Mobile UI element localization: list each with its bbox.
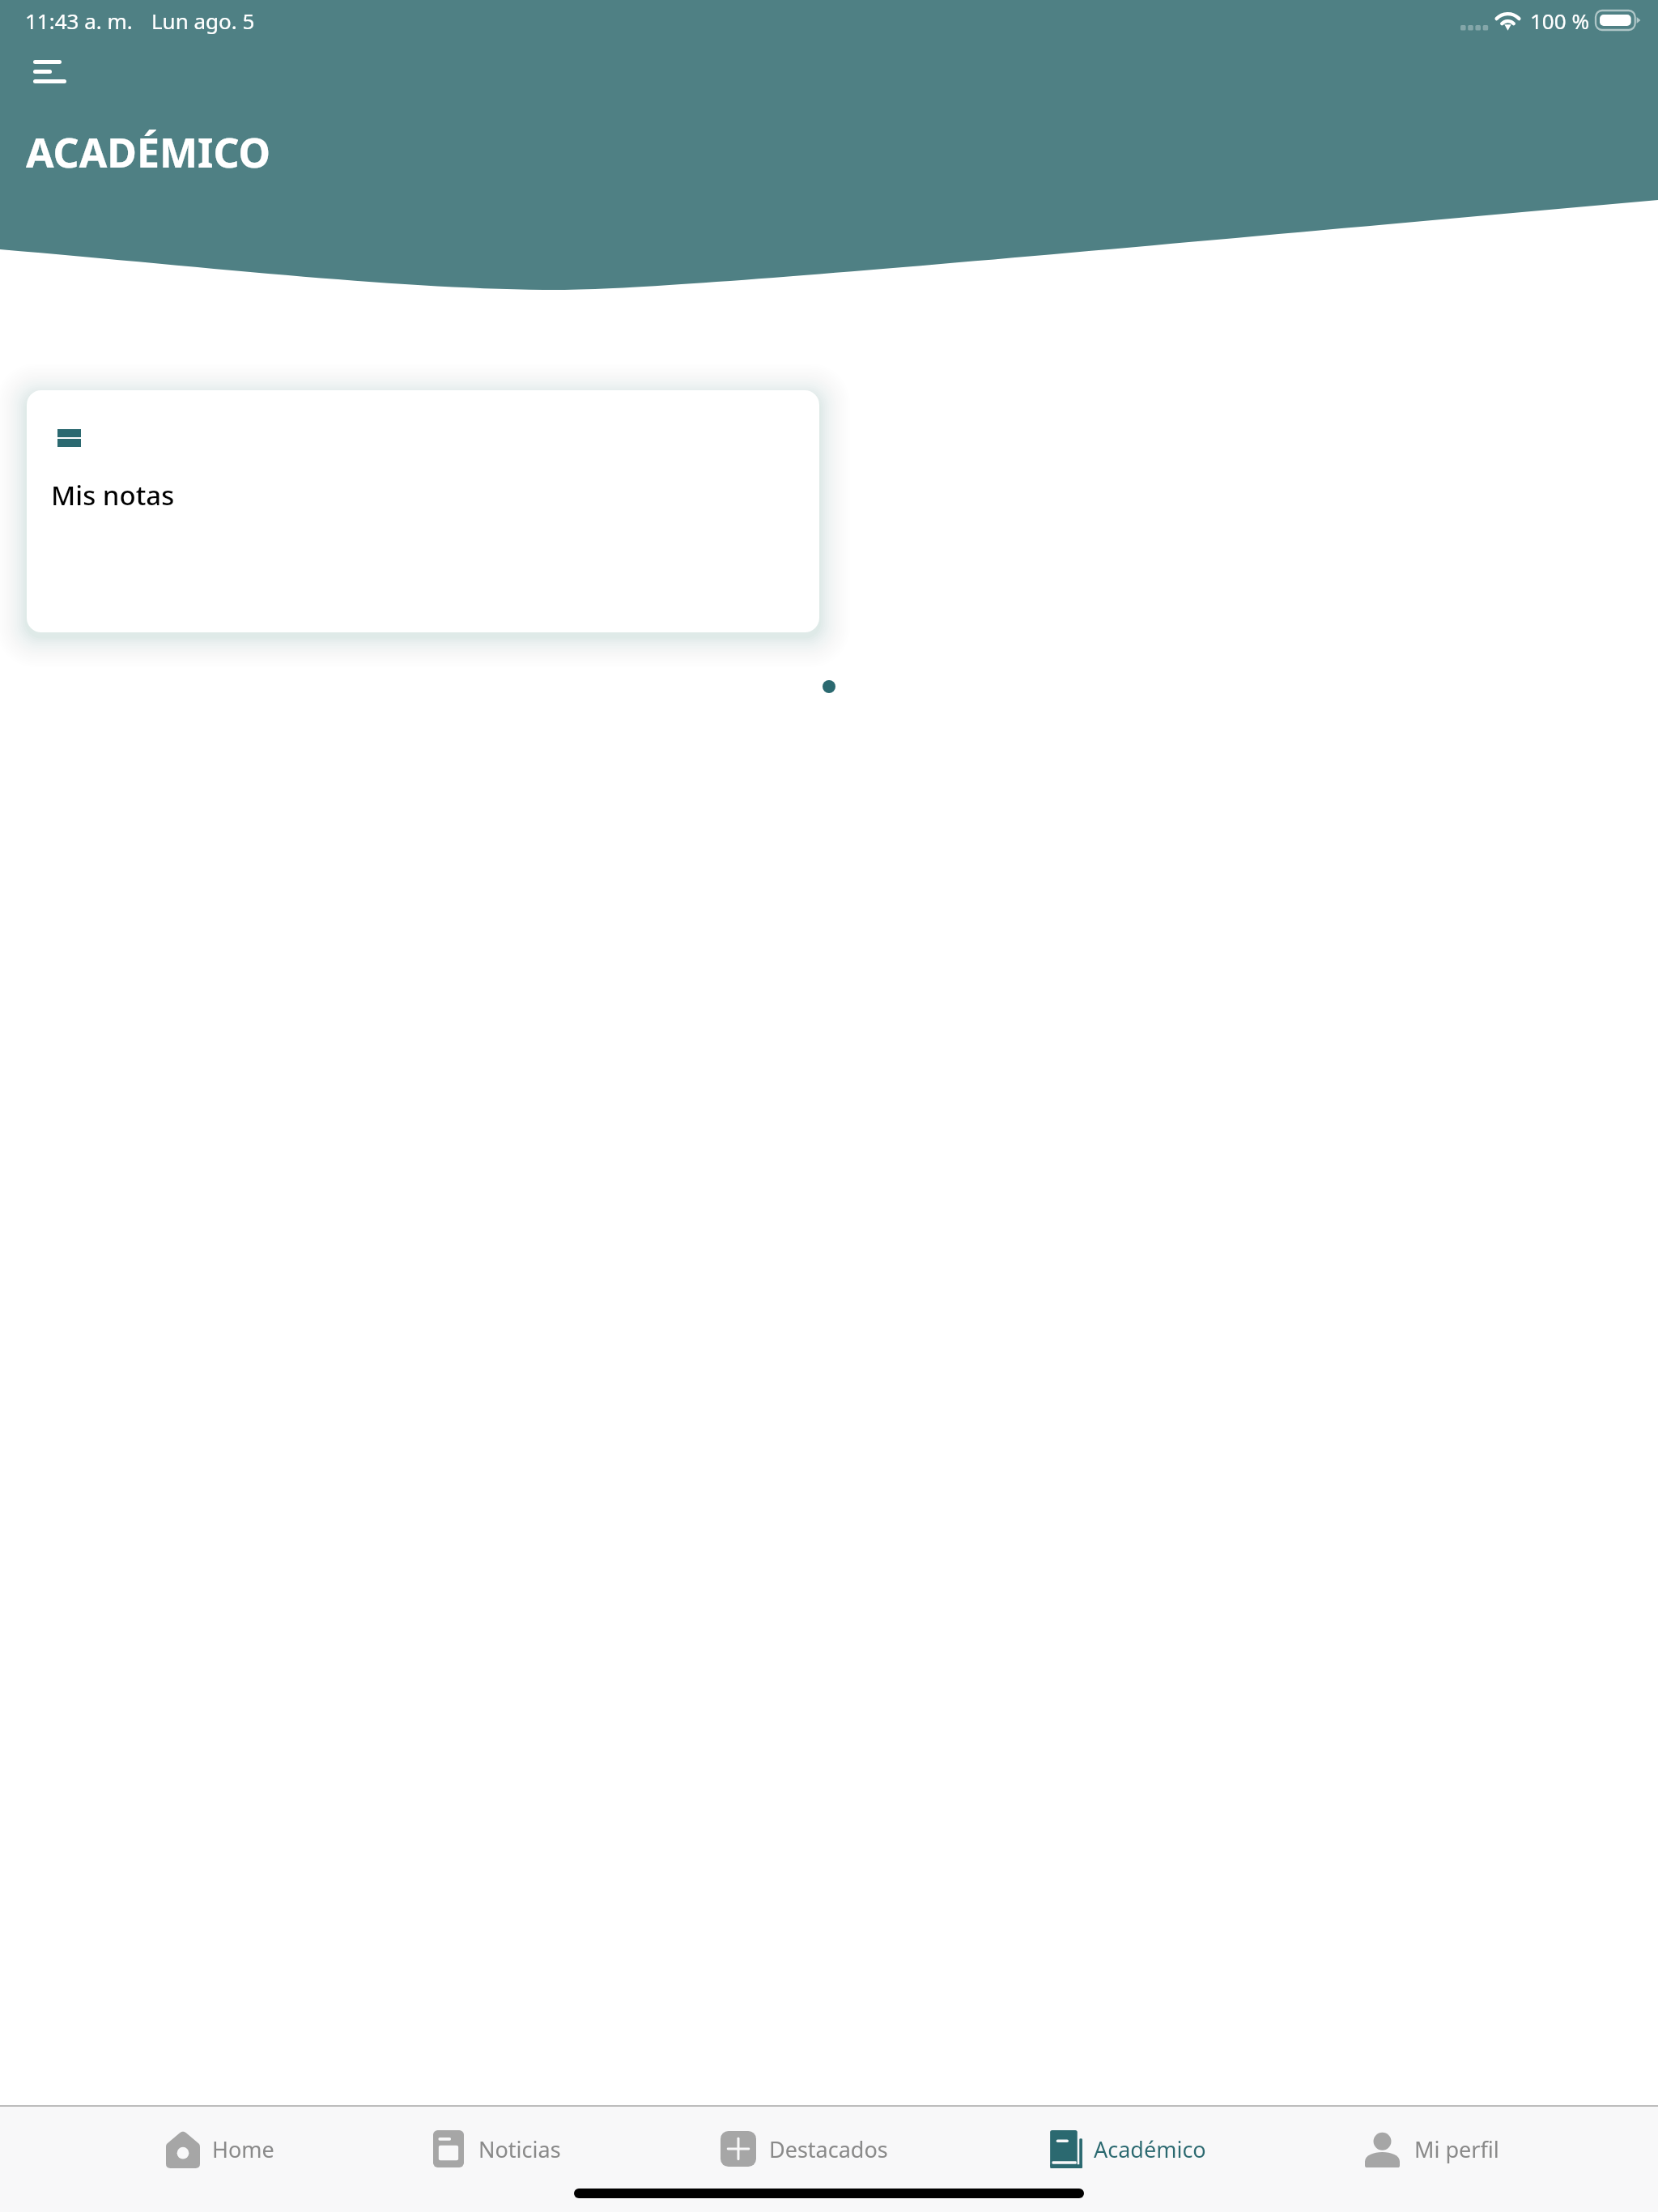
staticText: 100 %: [1530, 6, 1589, 35]
staticText: Destacados: [769, 2134, 888, 2164]
staticText: Lun ago. 5: [151, 6, 255, 35]
button[interactable]: Menu: [18, 47, 70, 99]
staticText: Mi perfil: [1414, 2134, 1499, 2164]
button[interactable]: Mi perfil: [1365, 2107, 1499, 2191]
button[interactable]: Mis notas: [27, 390, 819, 632]
button[interactable]: Home: [166, 2107, 274, 2191]
staticText: Home: [212, 2134, 274, 2164]
staticText: Académico: [1094, 2134, 1206, 2164]
staticText: Noticias: [478, 2134, 561, 2164]
staticText: ACADÉMICO: [26, 125, 271, 180]
button[interactable]: Académico: [1047, 2107, 1206, 2191]
staticText: Mis notas: [51, 477, 175, 513]
staticText: 11:43 a. m.: [25, 6, 133, 35]
button[interactable]: Destacados: [721, 2107, 888, 2191]
button[interactable]: Noticias: [433, 2107, 561, 2191]
